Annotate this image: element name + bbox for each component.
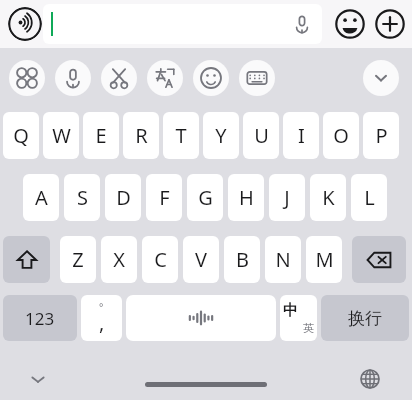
- staticText: ,: [99, 309, 105, 336]
- staticText: M: [315, 246, 334, 273]
- staticText: U: [254, 122, 269, 149]
- button[interactable]: W: [43, 112, 79, 159]
- staticText: °: [99, 300, 104, 314]
- button[interactable]: Hide keyboard: [25, 366, 51, 392]
- button[interactable]: C: [142, 236, 178, 283]
- staticText: 123: [25, 307, 55, 330]
- staticText: B: [236, 246, 249, 273]
- button[interactable]: R: [123, 112, 159, 159]
- button[interactable]: 123: [3, 295, 77, 341]
- button[interactable]: Voice input: [290, 12, 314, 36]
- staticText: Z: [72, 246, 84, 273]
- button[interactable]: Emoji: [333, 7, 367, 41]
- button[interactable]: Voice broadcast: [8, 7, 42, 41]
- button[interactable]: L: [351, 174, 387, 221]
- button[interactable]: Chinese English toggle: [280, 295, 317, 341]
- staticText: S: [77, 184, 88, 211]
- staticText: Q: [13, 122, 29, 149]
- staticText: Y: [215, 122, 227, 149]
- staticText: I: [298, 122, 305, 149]
- staticText: C: [154, 246, 167, 273]
- staticText: A: [35, 184, 48, 211]
- button[interactable]: A: [23, 174, 59, 221]
- button[interactable]: J: [269, 174, 305, 221]
- button[interactable]: Stickers: [193, 60, 229, 96]
- staticText: N: [275, 246, 291, 273]
- button[interactable]: Q: [3, 112, 39, 159]
- staticText: L: [364, 184, 375, 211]
- button[interactable]: N: [265, 236, 301, 283]
- button[interactable]: Collapse toolbar: [363, 60, 399, 96]
- staticText: X: [113, 246, 125, 273]
- button[interactable]: O: [323, 112, 359, 159]
- button[interactable]: 换行: [321, 295, 409, 341]
- staticText: F: [159, 184, 170, 211]
- staticText: J: [284, 184, 290, 211]
- button[interactable]: Comma: [81, 295, 122, 341]
- staticText: H: [239, 184, 254, 211]
- button[interactable]: Apps: [9, 60, 45, 96]
- button[interactable]: E: [83, 112, 119, 159]
- staticText: K: [322, 184, 335, 211]
- staticText: P: [375, 122, 388, 149]
- staticText: T: [175, 122, 187, 149]
- button[interactable]: V: [183, 236, 219, 283]
- staticText: W: [52, 122, 71, 149]
- button[interactable]: Voice input: [43, 4, 322, 44]
- staticText: G: [198, 184, 213, 211]
- staticText: 中: [283, 301, 298, 320]
- button[interactable]: Z: [60, 236, 96, 283]
- button[interactable]: M: [306, 236, 342, 283]
- button[interactable]: B: [224, 236, 260, 283]
- button[interactable]: Translate: [147, 60, 183, 96]
- button[interactable]: Clipboard: [101, 60, 137, 96]
- button[interactable]: G: [187, 174, 223, 221]
- button[interactable]: S: [64, 174, 100, 221]
- button[interactable]: Change language: [355, 364, 385, 394]
- button[interactable]: Space: [126, 295, 276, 341]
- button[interactable]: F: [146, 174, 182, 221]
- staticText: E: [95, 122, 107, 149]
- button[interactable]: D: [105, 174, 141, 221]
- button[interactable]: Add: [373, 7, 407, 41]
- staticText: D: [116, 184, 131, 211]
- button[interactable]: Y: [203, 112, 239, 159]
- button[interactable]: Shift: [3, 236, 50, 283]
- button[interactable]: Keyboard layout: [239, 60, 275, 96]
- button[interactable]: Voice: [55, 60, 91, 96]
- staticText: 英: [303, 321, 314, 335]
- button[interactable]: K: [310, 174, 346, 221]
- button[interactable]: Backspace: [352, 236, 406, 283]
- staticText: O: [333, 122, 349, 149]
- button[interactable]: U: [243, 112, 279, 159]
- button[interactable]: P: [363, 112, 399, 159]
- staticText: V: [195, 246, 207, 273]
- button[interactable]: H: [228, 174, 264, 221]
- button[interactable]: I: [283, 112, 319, 159]
- button[interactable]: T: [163, 112, 199, 159]
- staticText: R: [135, 122, 148, 149]
- button[interactable]: X: [101, 236, 137, 283]
- staticText: 换行: [348, 308, 382, 329]
